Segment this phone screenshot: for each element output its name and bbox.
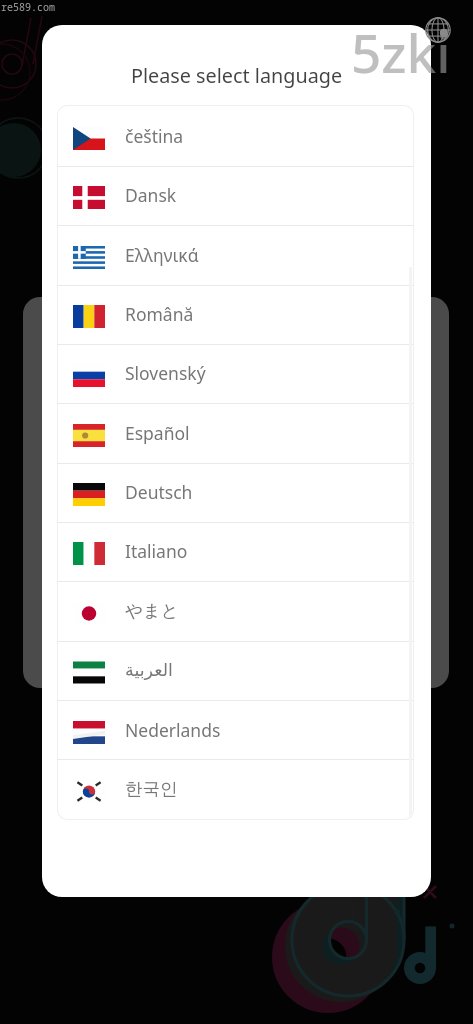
staticText: čeština [125,124,184,148]
button[interactable]: Nederlands [57,701,414,760]
button[interactable]: Deutsch [57,463,414,522]
button[interactable]: Română [57,285,414,344]
button[interactable]: čeština [57,107,414,166]
staticText: Slovenský [125,361,206,385]
button[interactable]: Slovenský [57,344,414,403]
staticText: Deutsch [125,480,193,504]
staticText: やまと [125,600,179,622]
staticText: 5zki [351,16,451,88]
button[interactable]: العربية [57,641,414,700]
button[interactable]: Italiano [57,522,414,581]
button[interactable]: やまと [57,582,414,641]
staticText: العربية [125,660,173,680]
staticText: 한국인 [125,778,178,800]
staticText: Română [125,302,194,326]
staticText: Ελληνικά [125,243,199,267]
staticText: Please select language [42,62,431,89]
staticText: Dansk [125,183,177,207]
staticText: re589.com [1,0,55,14]
button[interactable]: 한국인 [57,760,414,819]
button[interactable]: Dansk [57,166,414,225]
staticText: Español [125,421,190,445]
staticText: Nederlands [125,718,221,742]
button[interactable]: Ελληνικά [57,226,414,285]
button[interactable]: Español [57,404,414,463]
other: Language [425,17,451,43]
staticText: Italiano [125,539,188,563]
